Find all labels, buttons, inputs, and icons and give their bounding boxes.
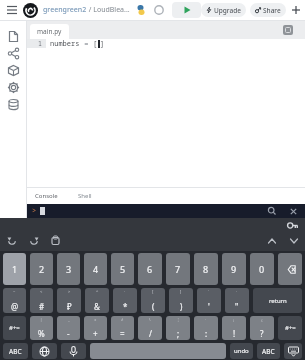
staticText: 2 [39, 263, 45, 275]
button[interactable] [5, 45, 22, 62]
staticText: 6 [147, 263, 153, 275]
button[interactable] [90, 343, 226, 359]
button[interactable]: 8 [194, 253, 218, 285]
button[interactable] [279, 21, 297, 39]
button[interactable] [5, 234, 18, 247]
button[interactable]: #+= [3, 316, 26, 340]
button[interactable]: ± [84, 316, 107, 340]
button[interactable]: 1 [3, 253, 26, 285]
button[interactable]: < [30, 288, 53, 313]
staticText: = [80, 39, 93, 48]
button[interactable] [172, 2, 201, 18]
button[interactable] [32, 343, 57, 359]
button[interactable]: 0 [250, 253, 274, 285]
staticText: Console [35, 192, 58, 200]
button[interactable]: 4 [84, 253, 107, 285]
button[interactable]: | [30, 316, 53, 340]
button[interactable]: ¦ [166, 316, 190, 340]
button[interactable]: \ [138, 316, 162, 340]
staticText: ~ [13, 289, 16, 294]
button[interactable]: ¡ [222, 316, 246, 340]
staticText: #+= [285, 324, 296, 332]
staticText: 7 [175, 263, 181, 275]
button[interactable] [284, 343, 302, 359]
button[interactable] [5, 79, 22, 96]
button[interactable]: ABC [257, 343, 280, 359]
button[interactable]: 2 [30, 253, 53, 285]
staticText: - [67, 328, 70, 339]
button[interactable]: ^ [85, 288, 109, 313]
button[interactable] [5, 96, 22, 113]
button[interactable]: Console [31, 188, 62, 204]
staticText: Share [263, 6, 281, 15]
button[interactable]: Share [250, 3, 286, 17]
button[interactable]: Upgrade [201, 3, 246, 17]
staticText: ? [260, 328, 264, 339]
button[interactable]: ≠ [111, 316, 134, 340]
button[interactable]: ` [197, 288, 221, 313]
staticText: 5 [120, 263, 126, 275]
staticText: < [40, 289, 43, 294]
staticText: #+= [9, 324, 20, 332]
button[interactable] [287, 234, 300, 247]
staticText: return [269, 297, 287, 305]
button[interactable] [5, 28, 22, 45]
button[interactable]: greengreen2 [43, 5, 130, 15]
staticText: ≠ [121, 317, 124, 322]
staticText: ) [180, 301, 183, 312]
button[interactable] [4, 2, 20, 18]
staticText: ¦ [177, 317, 180, 322]
button[interactable] [278, 253, 302, 285]
button[interactable]: ¿ [250, 316, 274, 340]
staticText: ^ [96, 289, 99, 294]
button[interactable]: [ [141, 288, 165, 313]
button[interactable]: ~ [3, 288, 26, 313]
button[interactable]: return [253, 288, 302, 313]
button[interactable]: 3 [57, 253, 80, 285]
staticText: Shell [78, 192, 92, 200]
staticText: 3 [66, 263, 72, 275]
button[interactable]: Shell [74, 188, 96, 204]
button[interactable]: ] [169, 288, 193, 313]
button[interactable]: undo [230, 343, 253, 359]
button[interactable]: main.py [30, 24, 69, 39]
button[interactable] [265, 234, 278, 247]
staticText: 0 [259, 263, 265, 275]
button[interactable] [5, 62, 22, 79]
button[interactable]: 5 [111, 253, 134, 285]
button[interactable] [61, 343, 86, 359]
button[interactable]: #+= [278, 316, 302, 340]
button[interactable]: 9 [222, 253, 246, 285]
staticText: 1 [38, 39, 42, 48]
button[interactable] [27, 234, 40, 247]
staticText: % [38, 328, 45, 339]
staticText: ' [208, 301, 210, 312]
button[interactable]: 6 [138, 253, 162, 285]
staticText: ¡ [233, 317, 235, 322]
button[interactable]: 7 [166, 253, 190, 285]
staticText: / [149, 328, 152, 339]
staticText: ! [233, 328, 236, 339]
button[interactable]: · [225, 288, 249, 313]
staticText: · [205, 317, 207, 322]
button[interactable] [23, 3, 38, 18]
staticText: & [94, 301, 100, 312]
button[interactable] [49, 234, 62, 247]
staticText: 8 [203, 263, 209, 275]
staticText: ± [94, 317, 97, 322]
button[interactable] [289, 3, 303, 17]
staticText: [ [93, 39, 98, 48]
button[interactable]: _ [57, 316, 80, 340]
staticText: undo [234, 347, 249, 355]
staticText: ] [180, 289, 182, 294]
button[interactable]: · [113, 288, 137, 313]
staticText: ₽ [67, 301, 72, 312]
staticText: Upgrade [214, 6, 241, 15]
staticText: = [120, 328, 125, 339]
staticText: \ [149, 317, 151, 322]
staticText: numbers [50, 39, 80, 48]
button[interactable]: · [194, 316, 218, 340]
staticText: ABC [262, 347, 275, 356]
button[interactable]: ABC [3, 343, 28, 359]
button[interactable]: > [57, 288, 81, 313]
